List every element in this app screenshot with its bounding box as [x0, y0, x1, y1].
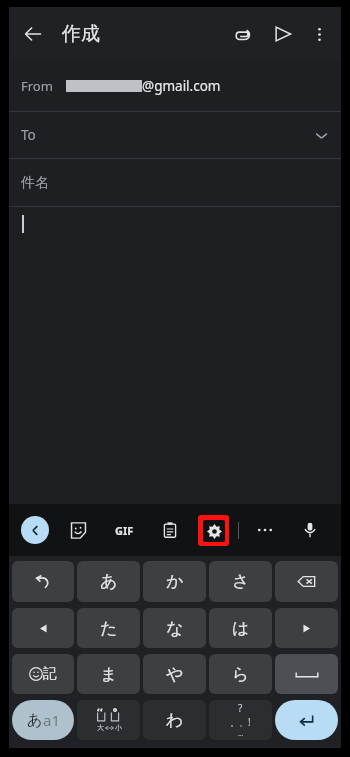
button[interactable]: Delete	[275, 561, 338, 602]
button[interactable]: Dakuten and small kana	[77, 700, 140, 740]
staticText: ま	[100, 664, 118, 685]
button[interactable]: Enter	[275, 700, 338, 740]
button[interactable]: Cursor right	[275, 608, 338, 648]
button[interactable]: あ	[12, 700, 74, 740]
staticText: ?	[238, 701, 243, 715]
button[interactable]: Collapse toolbar	[21, 516, 49, 544]
staticText: 、	[239, 717, 248, 728]
staticText: …	[238, 729, 244, 739]
button[interactable]: Punctuation	[209, 700, 272, 740]
staticText: a1	[43, 710, 60, 730]
staticText: た	[100, 618, 118, 639]
staticText: か	[166, 571, 184, 592]
staticText: あ	[27, 711, 43, 730]
button[interactable]: な	[143, 608, 206, 648]
staticText: ら	[232, 664, 250, 685]
button[interactable]: Voice input	[293, 513, 327, 547]
button[interactable]: Settings	[198, 515, 229, 546]
staticText: !	[248, 715, 251, 729]
staticText: や	[166, 664, 184, 685]
button[interactable]: More	[248, 513, 282, 547]
staticText: な	[166, 618, 184, 639]
button[interactable]: 件名	[9, 159, 341, 206]
button[interactable]: あ	[77, 561, 140, 602]
staticText: 作成	[62, 22, 100, 46]
button[interactable]: は	[209, 608, 272, 648]
button[interactable]: Attach file	[225, 16, 261, 52]
button[interactable]: Cursor left	[12, 608, 74, 648]
button[interactable]: た	[77, 608, 140, 648]
button[interactable]: さ	[209, 561, 272, 602]
staticText: わ	[166, 710, 184, 731]
button[interactable]: ま	[77, 654, 140, 694]
staticText: 小	[115, 723, 122, 732]
staticText: 大	[97, 723, 104, 732]
button[interactable]: ら	[209, 654, 272, 694]
staticText: From	[21, 77, 53, 95]
button[interactable]: や	[143, 654, 206, 694]
staticText: さ	[232, 571, 250, 592]
button[interactable]: か	[143, 561, 206, 602]
button[interactable]: Emoji and symbols	[12, 654, 74, 694]
staticText: あ	[100, 571, 118, 592]
staticText: @gmail.com	[142, 77, 221, 95]
staticText: GIF	[115, 523, 134, 538]
button[interactable]: From	[9, 60, 341, 111]
button[interactable]: More options	[303, 18, 335, 50]
staticText: To	[21, 126, 36, 144]
button[interactable]: Back	[14, 15, 52, 53]
button[interactable]: わ	[143, 700, 206, 740]
staticText: 。	[230, 717, 239, 728]
button[interactable]: GIF	[106, 512, 142, 548]
button[interactable]: Stickers	[61, 513, 95, 547]
button[interactable]: Undo	[12, 561, 74, 602]
staticText: 件名	[21, 174, 49, 192]
button[interactable]: To	[9, 112, 341, 158]
staticText: 記	[43, 665, 57, 683]
button[interactable]: Clipboard	[153, 513, 187, 547]
button[interactable]: Space	[275, 654, 338, 694]
staticText: は	[232, 618, 250, 639]
button[interactable]: Send	[265, 16, 301, 52]
